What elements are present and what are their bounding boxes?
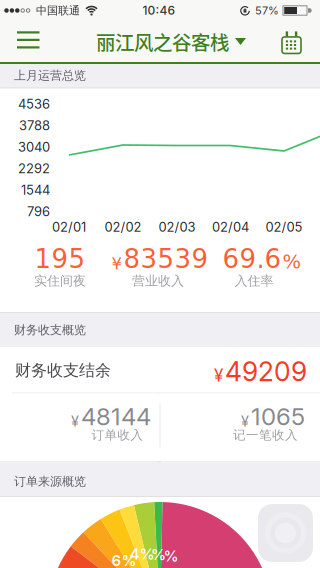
- staticText: 6%: [111, 551, 136, 568]
- staticText: 57%: [255, 4, 279, 17]
- staticText: 3788: [19, 118, 50, 133]
- staticText: 02/01: [52, 219, 86, 235]
- staticText: 4536: [18, 96, 50, 112]
- staticText: %: [151, 545, 166, 563]
- staticText: 195: [34, 244, 85, 274]
- staticText: 营业收入: [132, 273, 184, 289]
- staticText: 69.6: [222, 244, 281, 274]
- staticText: 10:46: [142, 3, 175, 18]
- staticText: ¥: [241, 412, 249, 430]
- staticText: 4%: [129, 545, 154, 563]
- button[interactable]: 财务收支结余: [0, 347, 320, 393]
- staticText: %: [163, 547, 178, 565]
- button[interactable]: AssistiveTouch: [258, 504, 313, 562]
- staticText: 83539: [123, 244, 208, 274]
- staticText: ¥: [214, 365, 223, 386]
- staticText: 丽江风之谷客栈: [96, 27, 229, 56]
- staticText: %: [282, 250, 301, 273]
- staticText: 财务收支结余: [15, 360, 111, 381]
- staticText: ¥: [71, 412, 79, 430]
- button[interactable]: Calendar: [276, 27, 306, 57]
- staticText: 02/05: [265, 219, 302, 235]
- staticText: 财务收支概览: [14, 322, 86, 337]
- button[interactable]: Menu: [14, 27, 43, 57]
- button[interactable]: ¥: [0, 393, 158, 461]
- staticText: 记一笔收入: [233, 427, 298, 443]
- button[interactable]: 丽江风之谷客栈: [96, 27, 246, 56]
- staticText: 订单收入: [91, 427, 143, 443]
- staticText: 3040: [18, 139, 50, 155]
- staticText: 49209: [225, 355, 307, 388]
- staticText: 1544: [21, 182, 50, 198]
- staticText: 中国联通: [36, 4, 80, 17]
- staticText: 订单来源概览: [14, 474, 86, 489]
- button[interactable]: ¥: [161, 393, 320, 461]
- staticText: 1065: [251, 402, 305, 431]
- staticText: 02/03: [158, 219, 195, 235]
- staticText: 02/04: [212, 219, 249, 235]
- staticText: 48144: [81, 402, 151, 431]
- staticText: 实住间夜: [34, 273, 86, 289]
- staticText: 2292: [18, 161, 50, 176]
- staticText: 上月运营总览: [14, 68, 86, 83]
- staticText: 入住率: [234, 273, 273, 289]
- staticText: 02/02: [104, 219, 141, 235]
- staticText: 796: [27, 204, 50, 219]
- staticText: ¥: [111, 254, 121, 273]
